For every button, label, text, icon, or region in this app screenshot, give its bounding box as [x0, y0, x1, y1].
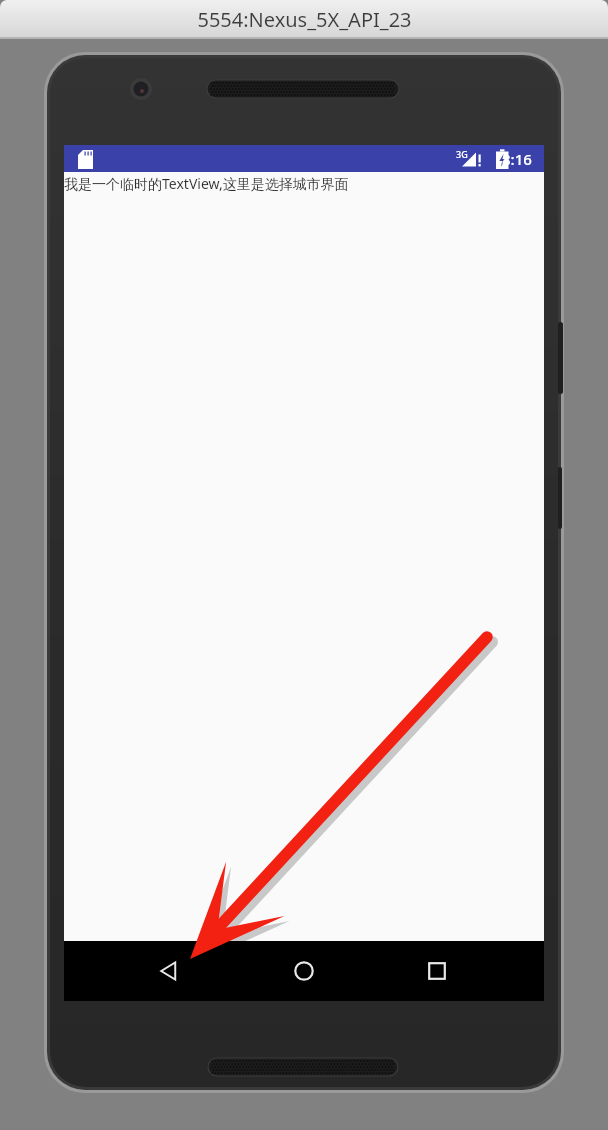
- staticText: 5554:Nexus_5X_API_23: [197, 6, 412, 33]
- button[interactable]: Back: [138, 941, 200, 1001]
- staticText: 我是一个临时的TextView,这里是选择城市界面: [64, 174, 349, 193]
- button[interactable]: Home: [273, 941, 335, 1001]
- staticText: 3G: [456, 148, 468, 160]
- button[interactable]: Recent apps: [406, 941, 468, 1001]
- staticText: 8:16: [502, 149, 532, 169]
